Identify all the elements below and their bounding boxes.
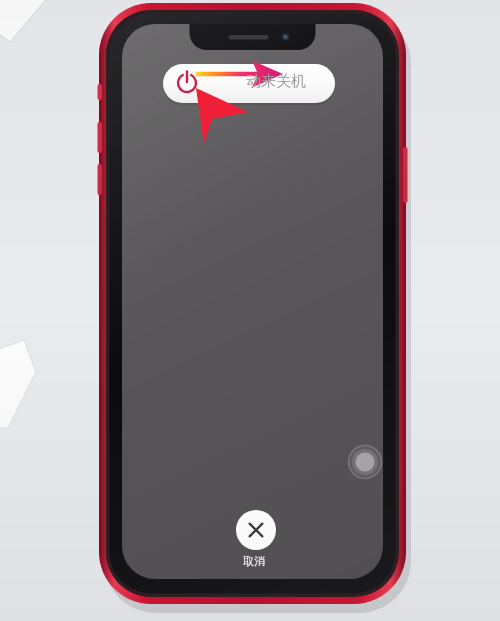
staticText: 动来关机 [246,72,306,91]
button[interactable]: 取消 [243,554,265,568]
button[interactable]: 取消 [236,510,276,550]
button[interactable]: 滑动来关机 [163,64,335,103]
